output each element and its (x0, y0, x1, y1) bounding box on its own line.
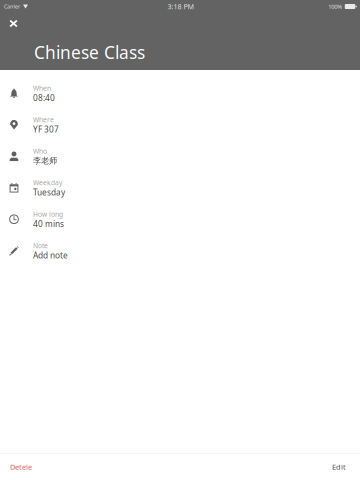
staticText: Chinese Class (34, 40, 145, 64)
staticText: Tuesday (33, 187, 65, 198)
staticText: Carrier (4, 3, 20, 10)
staticText: Note (33, 241, 48, 250)
button[interactable]: Edit (324, 455, 360, 479)
button[interactable]: How long (0, 205, 360, 236)
staticText: 100% (328, 2, 342, 10)
staticText: How long (33, 210, 63, 219)
staticText: Detele (10, 462, 32, 472)
button[interactable]: Weekday (0, 173, 360, 205)
staticText: Who (33, 147, 47, 156)
button[interactable]: Where (0, 110, 360, 142)
staticText: YF 307 (33, 124, 59, 135)
staticText: 李老师 (33, 155, 57, 166)
button[interactable]: Close (1, 13, 25, 34)
button[interactable]: Detele (0, 455, 40, 479)
staticText: 08:40 (33, 92, 55, 103)
staticText: 40 mins (33, 218, 64, 229)
button[interactable]: Who (0, 142, 360, 173)
staticText: Edit (332, 462, 346, 472)
button[interactable]: When (0, 79, 360, 110)
staticText: When (33, 84, 51, 93)
staticText: Add note (33, 250, 68, 261)
staticText: Where (33, 115, 54, 124)
staticText: Weekday (33, 178, 62, 187)
staticText: 3:18 PM (167, 2, 194, 11)
button[interactable]: Note (0, 236, 360, 268)
